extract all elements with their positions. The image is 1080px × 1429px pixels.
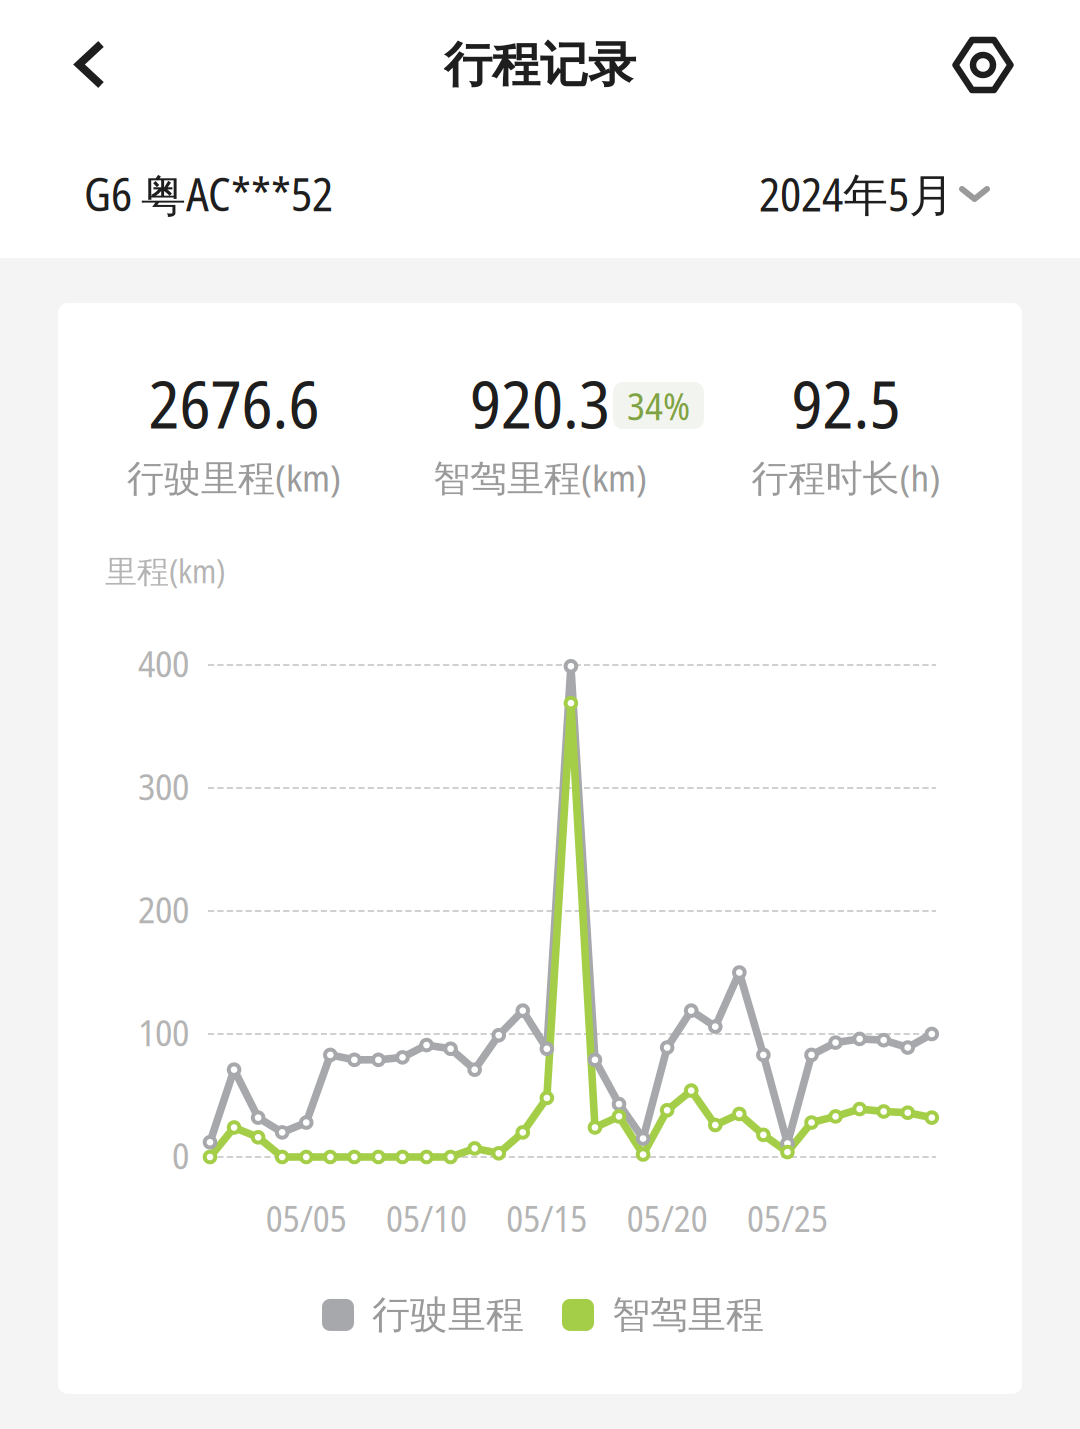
- staticText: 300: [138, 761, 189, 811]
- staticText: 400: [138, 638, 189, 688]
- staticText: 200: [138, 884, 189, 934]
- staticText: G6 粤AC***52: [84, 163, 333, 225]
- staticText: 行驶里程(km): [127, 452, 341, 502]
- staticText: 05/10: [386, 1193, 467, 1242]
- button[interactable]: Settings: [906, 0, 1080, 130]
- staticText: 05/15: [506, 1193, 587, 1242]
- staticText: 智驾里程(km): [433, 452, 647, 502]
- button[interactable]: Back: [0, 0, 143, 129]
- staticText: 920.3: [470, 358, 610, 448]
- staticText: 05/25: [747, 1193, 828, 1242]
- staticText: 里程(km): [105, 549, 225, 593]
- staticText: 2676.6: [148, 358, 319, 448]
- staticText: 行程记录: [444, 35, 636, 95]
- staticText: 行程时长(h): [751, 452, 940, 502]
- staticText: 100: [138, 1007, 189, 1057]
- staticText: 0: [172, 1130, 189, 1180]
- staticText: 05/20: [627, 1193, 708, 1242]
- staticText: 行驶里程: [372, 1291, 524, 1339]
- staticText: 34%: [627, 380, 690, 431]
- staticText: 92.5: [791, 358, 900, 448]
- staticText: 2024年5月: [759, 163, 954, 225]
- button[interactable]: 2024年5月: [759, 163, 987, 225]
- staticText: 智驾里程: [612, 1291, 764, 1339]
- staticText: 05/05: [266, 1193, 347, 1242]
